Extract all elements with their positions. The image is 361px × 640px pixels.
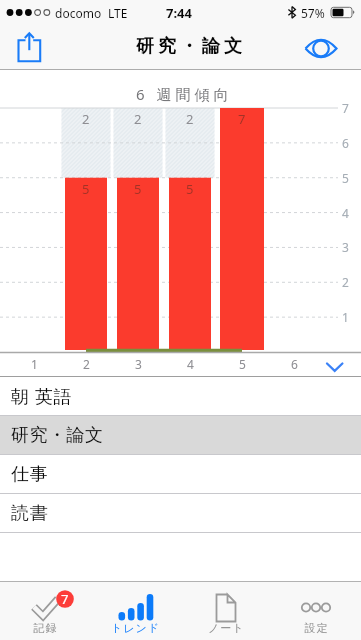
staticText: 2 bbox=[82, 110, 90, 128]
staticText: ノート bbox=[208, 621, 245, 635]
staticText: 5 bbox=[82, 180, 90, 198]
button[interactable]: トレンド bbox=[91, 582, 181, 640]
staticText: 2 bbox=[186, 110, 194, 128]
staticText: 7 bbox=[238, 110, 246, 128]
staticText: 57% bbox=[301, 5, 325, 21]
staticText: 1 bbox=[31, 356, 38, 372]
button[interactable]: 仕事 bbox=[0, 455, 361, 493]
staticText: 7 bbox=[342, 100, 349, 116]
button[interactable]: 設定 bbox=[271, 582, 361, 640]
staticText: 2 bbox=[342, 274, 349, 290]
staticText: LTE bbox=[108, 5, 128, 21]
staticText: 2 bbox=[83, 356, 90, 372]
staticText: 3 bbox=[342, 239, 349, 255]
button[interactable]: 朝 英語 bbox=[0, 377, 361, 415]
button[interactable]: 読書 bbox=[0, 494, 361, 532]
button[interactable]: ノート bbox=[181, 582, 271, 640]
staticText: 読書 bbox=[11, 502, 48, 525]
button[interactable]: 7 bbox=[0, 582, 91, 640]
button[interactable]: 研究・論文 bbox=[0, 416, 361, 454]
staticText: 1 bbox=[342, 309, 349, 325]
staticText: 記録 bbox=[33, 621, 57, 635]
button[interactable] bbox=[300, 33, 344, 67]
staticText: 7 bbox=[61, 590, 69, 608]
staticText: 5 bbox=[342, 170, 349, 186]
staticText: 仕事 bbox=[11, 463, 48, 486]
staticText: 6 bbox=[291, 356, 298, 372]
staticText: 2 bbox=[134, 110, 142, 128]
staticText: 朝 英語 bbox=[11, 384, 72, 409]
staticText: 研究・論文 bbox=[134, 35, 244, 58]
staticText: トレンド bbox=[111, 621, 161, 635]
staticText: 5 bbox=[239, 356, 246, 372]
staticText: 6 bbox=[342, 135, 349, 151]
staticText: 4 bbox=[187, 356, 194, 372]
button[interactable] bbox=[318, 354, 352, 376]
staticText: 6 週間傾向 bbox=[136, 84, 233, 104]
staticText: 設定 bbox=[304, 621, 328, 635]
staticText: 3 bbox=[135, 356, 142, 372]
staticText: docomo bbox=[55, 5, 102, 21]
button[interactable] bbox=[8, 27, 50, 68]
staticText: 4 bbox=[342, 205, 349, 221]
staticText: 7:44 bbox=[166, 4, 192, 22]
staticText: 5 bbox=[186, 180, 194, 198]
staticText: 研究・論文 bbox=[11, 424, 104, 447]
staticText: 5 bbox=[134, 180, 142, 198]
